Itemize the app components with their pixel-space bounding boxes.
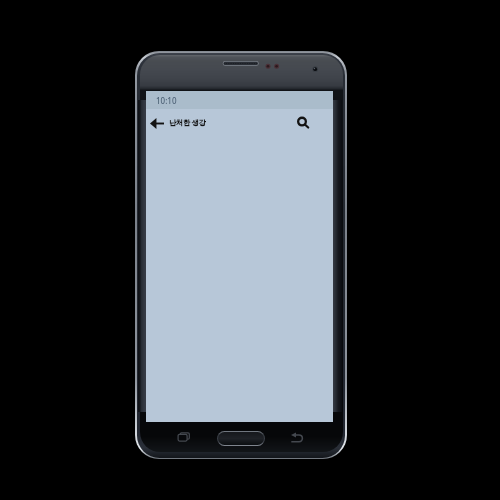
button[interactable]: Back xyxy=(147,111,167,135)
staticText: 난처한 생강 xyxy=(169,118,206,128)
button[interactable]: Back xyxy=(290,432,305,444)
button[interactable]: Search xyxy=(292,111,314,133)
staticText: 10:10 xyxy=(156,95,177,106)
button[interactable]: Home xyxy=(217,431,265,446)
button[interactable]: Recent apps xyxy=(177,431,192,443)
